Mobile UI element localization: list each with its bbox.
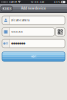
button[interactable]: sricam-camera [2, 16, 65, 25]
button[interactable]: Next [2, 52, 65, 61]
staticText: ●●●●●●● [11, 42, 25, 45]
button[interactable]: ●●●●●●● [2, 39, 65, 48]
staticText: Back [5, 7, 11, 10]
staticText: sricam-camera [11, 19, 29, 22]
staticText: 63% [54, 0, 60, 4]
staticText: Add new device [21, 7, 46, 10]
button[interactable]: Scan QR code [55, 28, 65, 36]
staticText: 12:04 AM [31, 0, 44, 4]
staticText: Next [30, 55, 36, 58]
staticText: 1068768 [11, 30, 23, 33]
staticText: Carrier [9, 0, 17, 4]
button[interactable]: Back [1, 6, 12, 11]
button[interactable]: 1068768 [2, 28, 54, 36]
